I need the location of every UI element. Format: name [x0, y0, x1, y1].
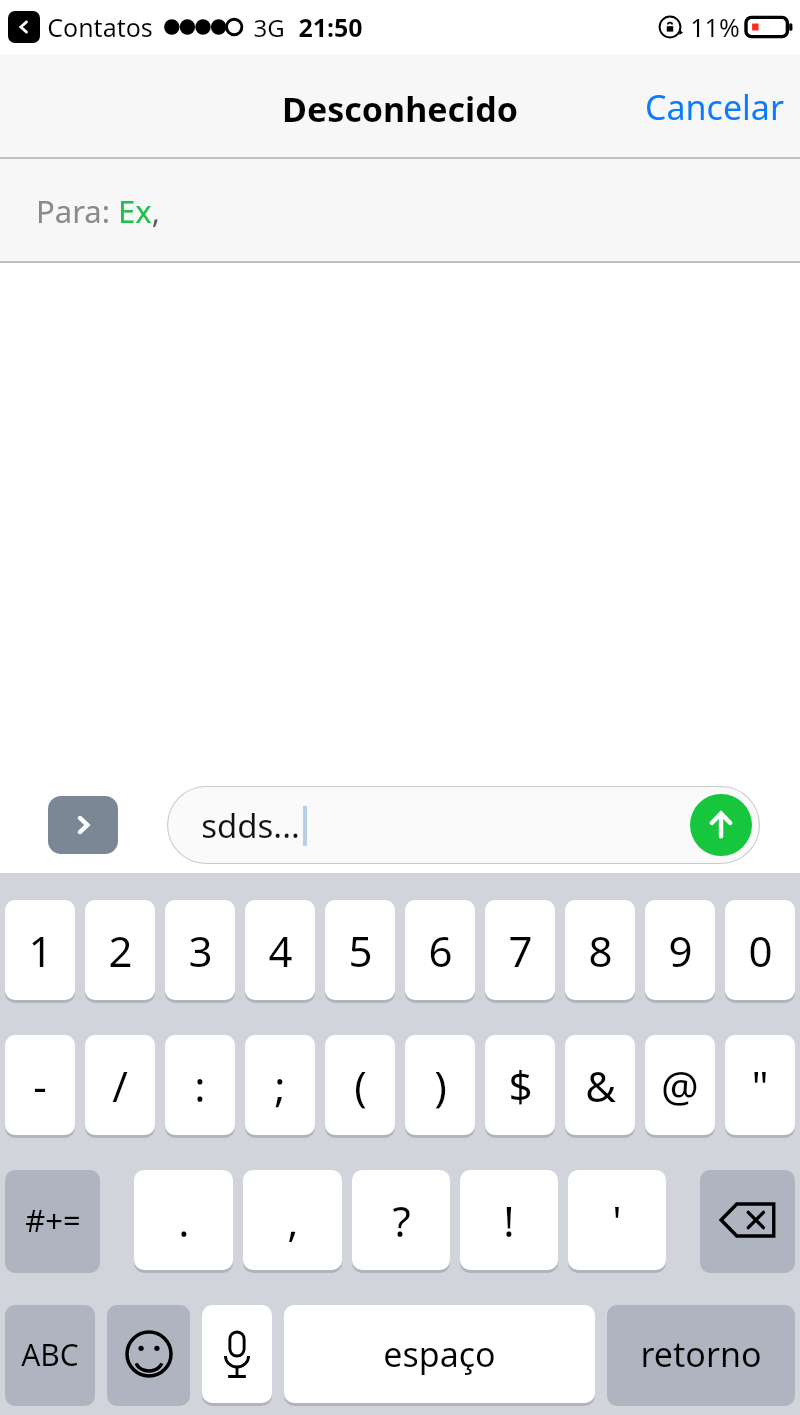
button[interactable]: ): [405, 1035, 475, 1135]
button[interactable]: /: [85, 1035, 155, 1135]
button[interactable]: &: [565, 1035, 635, 1135]
button[interactable]: ?: [352, 1170, 450, 1270]
staticText: .: [178, 1192, 190, 1249]
staticText: 7: [508, 922, 533, 979]
staticText: 2: [108, 922, 133, 979]
button[interactable]: @: [645, 1035, 715, 1135]
staticText: Desconhecido: [282, 86, 518, 132]
button[interactable]: retorno: [607, 1305, 795, 1403]
button[interactable]: Cancelar: [639, 76, 790, 138]
button[interactable]: espaço: [284, 1305, 595, 1403]
staticText: 9: [668, 922, 693, 979]
staticText: (: [354, 1057, 367, 1114]
staticText: ,: [287, 1192, 299, 1249]
button[interactable]: 1: [5, 900, 75, 1000]
staticText: 3: [188, 922, 213, 979]
staticText: retorno: [640, 1331, 762, 1377]
button[interactable]: #+=: [5, 1170, 100, 1270]
button[interactable]: 3: [165, 900, 235, 1000]
button[interactable]: ": [725, 1035, 795, 1135]
button[interactable]: 8: [565, 900, 635, 1000]
staticText: 0: [748, 922, 773, 979]
button[interactable]: $: [485, 1035, 555, 1135]
button[interactable]: ;: [245, 1035, 315, 1135]
button[interactable]: Apagar: [700, 1170, 795, 1270]
staticText: !: [503, 1192, 515, 1249]
button[interactable]: Ditado: [202, 1305, 272, 1403]
button[interactable]: Voltar: [8, 11, 40, 43]
staticText: :: [194, 1057, 206, 1114]
staticText: espaço: [383, 1331, 496, 1377]
button[interactable]: ': [568, 1170, 666, 1270]
staticText: ?: [392, 1192, 411, 1249]
staticText: @: [661, 1057, 699, 1114]
staticText: 1: [28, 922, 53, 979]
staticText: 21:50: [298, 10, 363, 44]
staticText: Contatos: [47, 10, 153, 44]
staticText: Para: Ex,: [36, 190, 161, 232]
staticText: 8: [588, 922, 613, 979]
button[interactable]: 9: [645, 900, 715, 1000]
staticText: $: [508, 1057, 533, 1114]
staticText: Cancelar: [645, 84, 784, 130]
staticText: ': [612, 1192, 622, 1249]
staticText: ": [751, 1057, 769, 1114]
staticText: 4: [268, 922, 293, 979]
button[interactable]: (: [325, 1035, 395, 1135]
button[interactable]: 2: [85, 900, 155, 1000]
button[interactable]: sdds...: [167, 786, 760, 864]
staticText: 6: [428, 922, 453, 979]
button[interactable]: ABC: [5, 1305, 95, 1403]
button[interactable]: Enviar: [690, 794, 752, 856]
staticText: ABC: [21, 1334, 79, 1375]
button[interactable]: .: [134, 1170, 233, 1270]
button[interactable]: :: [165, 1035, 235, 1135]
staticText: 5: [348, 922, 373, 979]
staticText: 11%: [690, 10, 740, 44]
button[interactable]: Para: Ex,: [0, 159, 800, 263]
staticText: /: [112, 1057, 128, 1114]
button[interactable]: 4: [245, 900, 315, 1000]
staticText: sdds...: [201, 803, 300, 848]
button[interactable]: Expandir: [48, 796, 118, 854]
staticText: #+=: [25, 1199, 81, 1241]
staticText: ;: [274, 1057, 286, 1114]
button[interactable]: -: [5, 1035, 75, 1135]
button[interactable]: 0: [725, 900, 795, 1000]
staticText: ): [434, 1057, 447, 1114]
button[interactable]: ,: [243, 1170, 342, 1270]
button[interactable]: 7: [485, 900, 555, 1000]
button[interactable]: Emoji: [107, 1305, 190, 1403]
staticText: &: [585, 1057, 616, 1114]
button[interactable]: 6: [405, 900, 475, 1000]
button[interactable]: !: [460, 1170, 558, 1270]
button[interactable]: 5: [325, 900, 395, 1000]
staticText: -: [33, 1057, 47, 1114]
staticText: 3G: [253, 11, 285, 44]
